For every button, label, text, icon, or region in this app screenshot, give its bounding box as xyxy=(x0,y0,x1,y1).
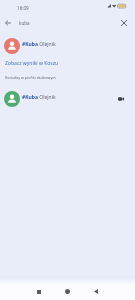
button[interactable]: Back xyxy=(85,285,107,300)
button[interactable]: #Kuba Olejnik xyxy=(0,37,135,55)
staticText: Zobacz wyniki w Koszu xyxy=(5,60,59,67)
button[interactable]: #Kuba Olejnik xyxy=(0,90,135,108)
staticText: #Kuba Olejnik xyxy=(22,94,56,101)
button[interactable]: Home xyxy=(56,285,78,300)
button[interactable]: Zobacz wyniki w Koszu xyxy=(0,55,135,71)
staticText: kuba xyxy=(19,20,30,26)
button[interactable]: Recent apps xyxy=(28,285,50,300)
button[interactable]: Clear search xyxy=(117,16,131,30)
button[interactable]: Back xyxy=(1,16,15,30)
staticText: Kontakty w profilu służbowym xyxy=(5,75,56,80)
staticText: #Kuba Olejnik xyxy=(22,41,56,48)
staticText: 16:09 xyxy=(17,5,29,11)
button[interactable]: Video call xyxy=(115,93,127,105)
